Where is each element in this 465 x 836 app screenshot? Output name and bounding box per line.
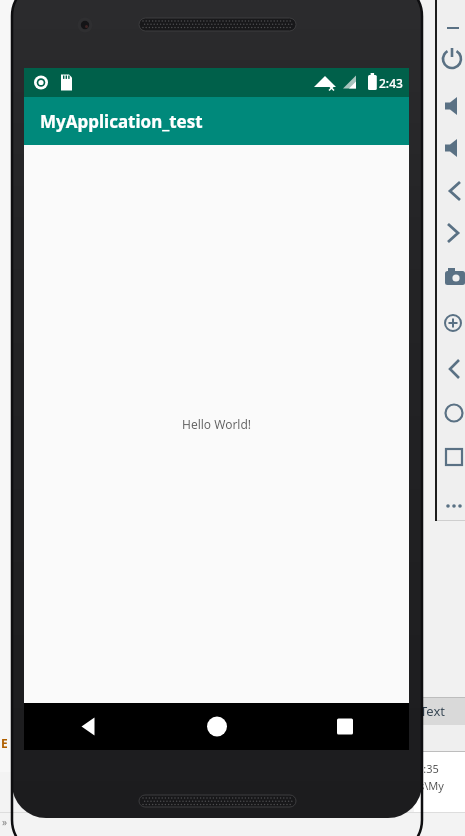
staticText: 2:43 <box>379 75 403 91</box>
button[interactable]: Take screenshot <box>447 264 465 292</box>
button[interactable]: Home <box>447 399 465 427</box>
button[interactable]: More <box>447 492 465 520</box>
button[interactable]: Minimize <box>447 14 465 42</box>
staticText: » <box>2 815 8 829</box>
staticText: Text <box>420 702 445 720</box>
staticText: Hello World! <box>182 416 252 432</box>
button[interactable]: Back <box>24 703 153 750</box>
staticText: E <box>1 735 8 751</box>
button[interactable]: MyApplication_test <box>24 97 409 145</box>
staticText: MyApplication_test <box>40 110 203 133</box>
staticText: 2:35 <box>417 761 439 776</box>
button[interactable]: Overview <box>447 443 465 471</box>
button[interactable]: Recent apps <box>281 703 409 750</box>
button[interactable]: Zoom <box>447 309 465 337</box>
button[interactable]: Rotate left <box>447 177 465 205</box>
button[interactable]: Volume up <box>447 92 465 120</box>
button[interactable]: Home <box>153 703 281 750</box>
button[interactable]: Rotate right <box>447 219 465 247</box>
button[interactable]: Volume down <box>447 134 465 162</box>
button[interactable]: Power <box>447 45 465 73</box>
button[interactable]: Back <box>447 355 465 383</box>
staticText: ts\My <box>415 778 444 793</box>
